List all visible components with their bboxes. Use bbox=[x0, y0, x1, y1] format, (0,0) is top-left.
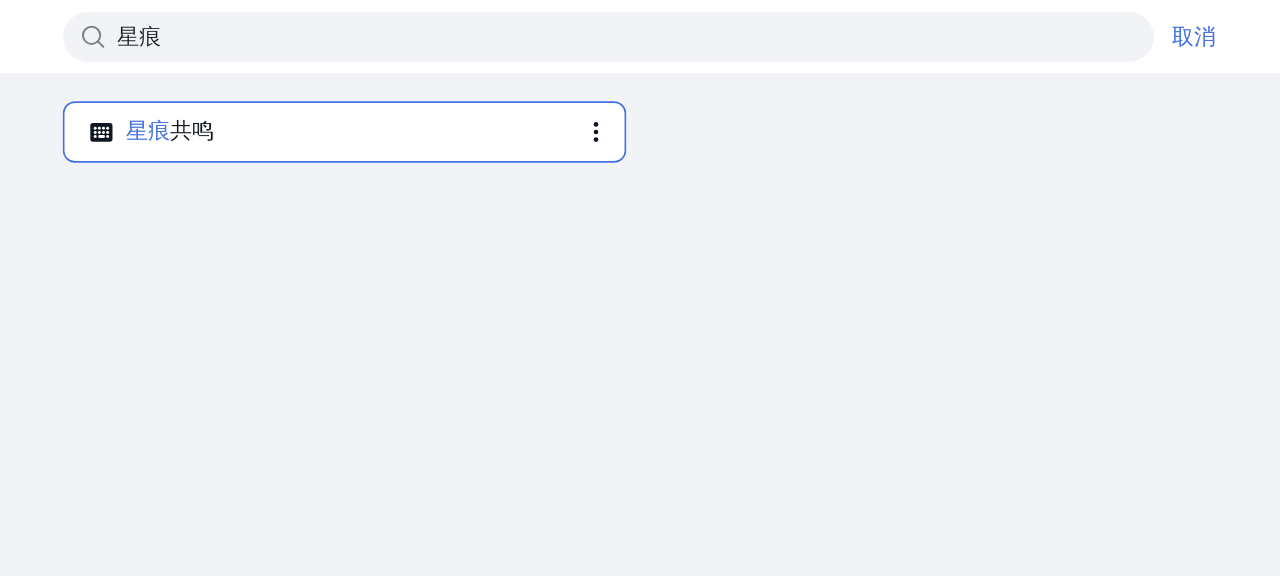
button[interactable]: 星痕共鸣 bbox=[60, 98, 630, 166]
staticText: 星痕共鸣 bbox=[126, 117, 214, 145]
staticText: 取消 bbox=[1172, 23, 1216, 51]
button[interactable]: More options bbox=[573, 109, 618, 154]
button[interactable]: 取消 bbox=[1161, 13, 1226, 61]
staticText: 星痕 bbox=[117, 23, 161, 51]
button[interactable]: 星痕 bbox=[63, 12, 1154, 62]
staticText: 取消 bbox=[1172, 23, 1216, 51]
staticText: 星痕 bbox=[117, 23, 161, 51]
staticText: 星痕共鸣 bbox=[126, 117, 214, 145]
